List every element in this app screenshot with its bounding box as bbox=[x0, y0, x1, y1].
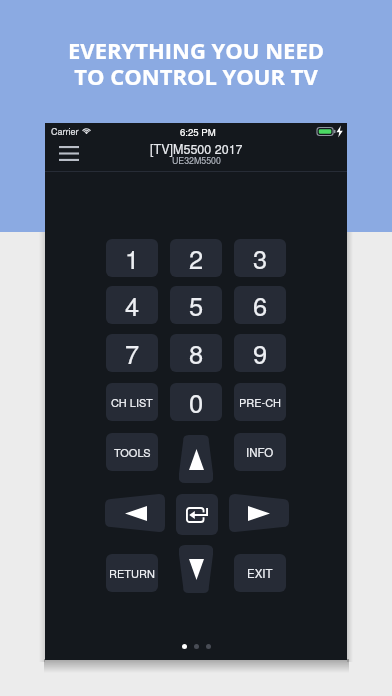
staticText: EVERYTHING YOU NEED bbox=[68, 35, 324, 65]
staticText: EXIT bbox=[247, 565, 273, 581]
staticText: CH LIST bbox=[111, 394, 153, 410]
staticText: 1 bbox=[125, 240, 140, 277]
button[interactable]: EXIT bbox=[234, 554, 286, 592]
button[interactable]: 5 bbox=[170, 286, 222, 324]
button[interactable]: Up bbox=[179, 435, 213, 483]
staticText: UE32M5500 bbox=[172, 154, 221, 164]
staticText: [TV]M5500 2017 bbox=[150, 140, 243, 158]
staticText: 3 bbox=[253, 240, 268, 277]
staticText: 6:25 PM bbox=[180, 125, 216, 139]
button[interactable]: 6 bbox=[234, 286, 286, 324]
staticText: 0 bbox=[189, 384, 204, 421]
button[interactable]: RETURN bbox=[106, 554, 158, 592]
button[interactable]: 0 bbox=[170, 383, 222, 421]
button[interactable]: TOOLS bbox=[106, 433, 158, 471]
staticText: TO CONTROL YOUR TV bbox=[74, 61, 318, 91]
button[interactable]: 7 bbox=[106, 334, 158, 372]
staticText: 6 bbox=[253, 287, 268, 324]
button[interactable]: Enter bbox=[176, 494, 218, 535]
button[interactable]: Down bbox=[179, 545, 213, 593]
staticText: 8 bbox=[189, 335, 204, 372]
button[interactable]: 1 bbox=[106, 239, 158, 277]
staticText: 5 bbox=[189, 287, 204, 324]
button[interactable]: Menu bbox=[52, 140, 86, 168]
button[interactable]: 8 bbox=[170, 334, 222, 372]
button[interactable]: 9 bbox=[234, 334, 286, 372]
button[interactable]: 4 bbox=[106, 286, 158, 324]
button[interactable]: CH LIST bbox=[106, 383, 158, 421]
button[interactable]: Right bbox=[229, 494, 289, 532]
button[interactable]: PRE-CH bbox=[234, 383, 286, 421]
staticText: TOOLS bbox=[114, 444, 151, 460]
staticText: 2 bbox=[189, 240, 204, 277]
staticText: 7 bbox=[125, 335, 140, 372]
staticText: 9 bbox=[253, 335, 268, 372]
staticText: Carrier bbox=[51, 125, 79, 138]
staticText: PRE-CH bbox=[239, 394, 282, 410]
staticText: INFO bbox=[246, 444, 274, 460]
button[interactable]: 2 bbox=[170, 239, 222, 277]
button[interactable]: INFO bbox=[234, 433, 286, 471]
staticText: 4 bbox=[125, 287, 140, 324]
button[interactable]: 3 bbox=[234, 239, 286, 277]
button[interactable]: Left bbox=[105, 494, 165, 532]
staticText: RETURN bbox=[109, 565, 155, 581]
